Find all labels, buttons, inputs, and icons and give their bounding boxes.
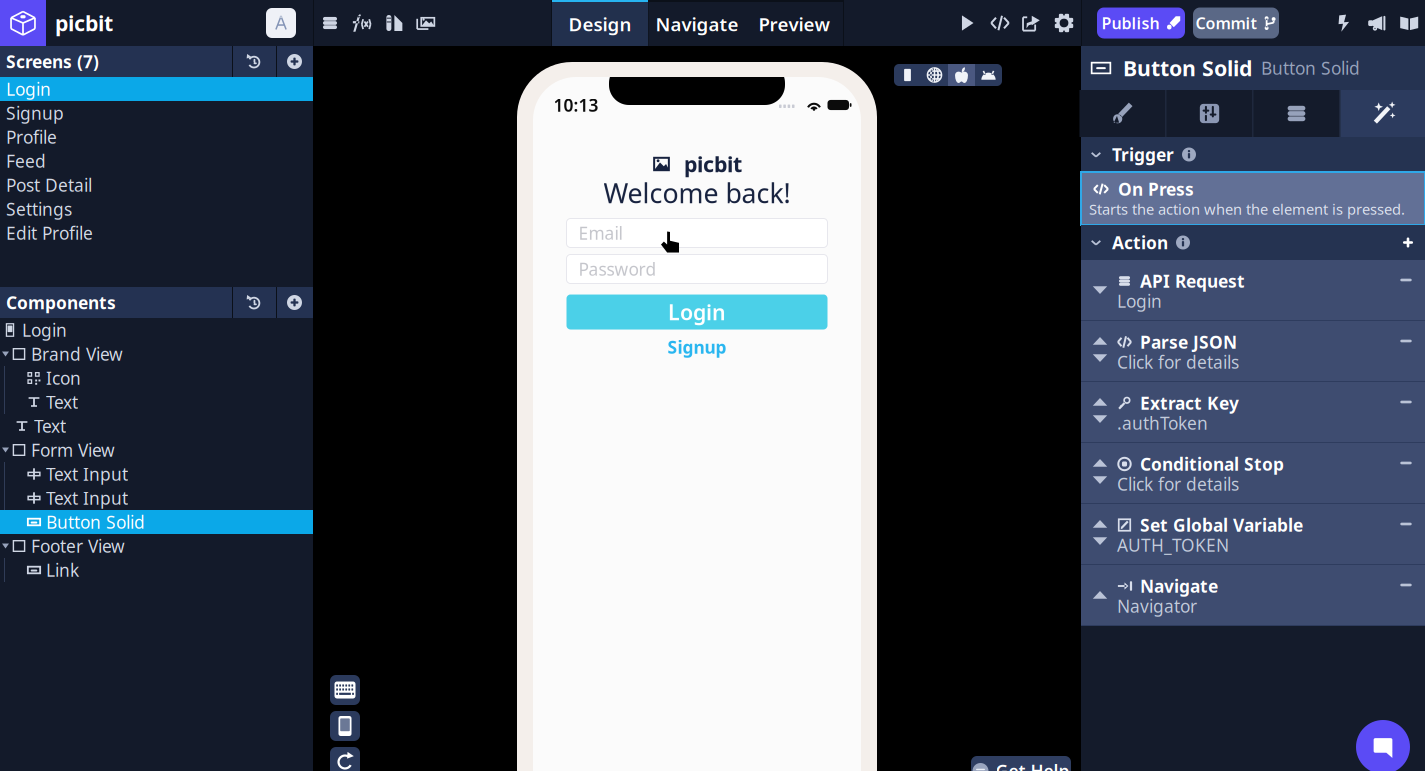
button[interactable]: Style	[1079, 90, 1165, 137]
staticText: Parse JSON	[1140, 330, 1237, 353]
button[interactable]: Footer View	[0, 534, 313, 558]
staticText: Icon	[46, 366, 81, 389]
staticText: Action	[1112, 231, 1168, 254]
button[interactable]: Add	[276, 287, 313, 318]
button[interactable]: Brand View	[0, 342, 313, 366]
staticText: Button Solid	[1261, 56, 1360, 79]
button[interactable]: Remove Navigate	[1392, 571, 1420, 599]
button[interactable]: Link	[0, 558, 313, 582]
staticText: On Press	[1118, 177, 1194, 200]
button[interactable]: Remove API Request	[1392, 266, 1420, 294]
button[interactable]: Theme	[378, 0, 410, 46]
staticText: Text	[34, 414, 66, 437]
button[interactable]: Text	[0, 414, 313, 438]
staticText: Text	[46, 390, 78, 413]
button[interactable]: Share	[1014, 0, 1047, 46]
button[interactable]: Login	[566, 294, 827, 329]
button[interactable]: Remove Parse JSON	[1392, 327, 1420, 355]
button[interactable]: Password	[566, 254, 827, 283]
button[interactable]: Mobile size	[894, 64, 921, 86]
staticText: Design	[568, 12, 631, 36]
button[interactable]: Publish	[1097, 7, 1185, 38]
button[interactable]: Parse JSON	[1081, 321, 1425, 382]
staticText: Login	[668, 298, 726, 326]
button[interactable]: Add	[276, 46, 313, 77]
button[interactable]: Edit Profile	[0, 221, 313, 245]
button[interactable]: Login	[0, 77, 313, 101]
button[interactable]: Remove Set Global Variable	[1392, 510, 1420, 538]
button[interactable]: Preview	[745, 0, 843, 46]
button[interactable]: Add action	[1394, 228, 1422, 256]
button[interactable]: API Request	[1081, 260, 1425, 321]
button[interactable]: Reload preview	[330, 747, 360, 771]
button[interactable]: Text	[0, 390, 313, 414]
button[interactable]: Profile	[0, 125, 313, 149]
button[interactable]: Code	[983, 0, 1016, 46]
staticText: Components	[6, 291, 116, 314]
button[interactable]: Login	[0, 318, 313, 342]
button[interactable]: iOS	[948, 64, 975, 86]
button[interactable]: Icon	[0, 366, 313, 390]
button[interactable]: Email	[566, 218, 827, 247]
button[interactable]: Feed	[0, 149, 313, 173]
staticText: Password	[578, 257, 656, 280]
button[interactable]: Drafting mode	[266, 8, 296, 38]
button[interactable]: Conditional Stop	[1081, 443, 1425, 504]
staticText: Trigger	[1112, 143, 1174, 166]
button[interactable]: Data	[314, 0, 346, 46]
button[interactable]: Button Solid	[0, 510, 313, 534]
staticText: Text Input	[46, 462, 128, 485]
staticText: Navigator	[1117, 594, 1197, 617]
button[interactable]: Activity	[1329, 0, 1359, 46]
button[interactable]: Text Input	[0, 486, 313, 510]
button[interactable]: Extract Key	[1081, 382, 1425, 443]
button[interactable]: History	[232, 287, 276, 318]
button[interactable]: Navigate	[648, 0, 745, 46]
staticText: Conditional Stop	[1140, 452, 1284, 475]
staticText: .authToken	[1117, 411, 1208, 434]
button[interactable]: Docs	[1393, 0, 1425, 46]
button[interactable]: Remove Extract Key	[1392, 388, 1420, 416]
button[interactable]: Text Input	[0, 462, 313, 486]
staticText: Navigate	[655, 12, 738, 36]
staticText: Welcome back!	[603, 175, 790, 211]
staticText: Click for details	[1117, 472, 1239, 495]
staticText: Button Solid	[1123, 54, 1252, 82]
button[interactable]: Get Help	[971, 756, 1071, 771]
button[interactable]: History	[232, 46, 276, 77]
staticText: Feed	[6, 149, 46, 172]
button[interactable]: Set Global Variable	[1081, 504, 1425, 565]
button[interactable]: Web	[921, 64, 948, 86]
button[interactable]: Signup	[0, 101, 313, 125]
button[interactable]: Layout	[1166, 90, 1252, 137]
staticText: Signup	[667, 335, 726, 358]
button[interactable]: Post Detail	[0, 173, 313, 197]
button[interactable]: Actions	[1340, 90, 1425, 137]
button[interactable]: Device frame	[330, 711, 360, 741]
staticText: Screens (7)	[6, 50, 99, 73]
button[interactable]: Data	[1253, 90, 1339, 137]
button[interactable]: Signup	[661, 336, 733, 358]
staticText: Post Detail	[6, 173, 92, 196]
button[interactable]: Settings	[1047, 0, 1080, 46]
staticText: Get Help	[995, 759, 1069, 771]
button[interactable]: Open support chat	[1356, 720, 1410, 771]
button[interactable]: Design	[552, 0, 648, 46]
button[interactable]: Remove Conditional Stop	[1392, 449, 1420, 477]
button[interactable]: Commit	[1193, 7, 1279, 38]
button[interactable]: picbit home	[0, 0, 46, 46]
staticText: Login	[22, 318, 67, 341]
button[interactable]: Android	[975, 64, 1002, 86]
button[interactable]: Settings	[0, 197, 313, 221]
staticText: Footer View	[31, 534, 125, 557]
button[interactable]: Form View	[0, 438, 313, 462]
staticText: Signup	[6, 101, 64, 124]
button[interactable]: Functions	[346, 0, 378, 46]
button[interactable]: Run	[950, 0, 983, 46]
button[interactable]: Announcements	[1361, 0, 1393, 46]
button[interactable]: Navigate	[1081, 565, 1425, 626]
button[interactable]: Assets	[410, 0, 442, 46]
staticText: 10:13	[553, 93, 598, 116]
button[interactable]: On Press	[1081, 172, 1425, 225]
button[interactable]: Toggle keyboard	[330, 675, 360, 705]
